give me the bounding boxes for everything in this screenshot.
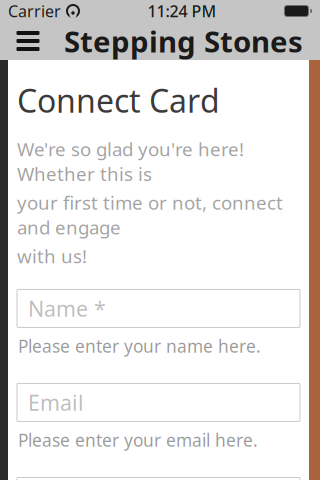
staticText: Please enter your name here. — [18, 334, 261, 357]
staticText: We're so glad you're here! Whether this … — [17, 136, 244, 186]
staticText: Please enter your email here. — [18, 428, 258, 451]
staticText: Carrier — [8, 0, 61, 22]
button[interactable]: Email — [17, 383, 300, 421]
staticText: 11:24 PM — [147, 0, 216, 22]
staticText: with us! — [17, 244, 87, 268]
staticText: Name * — [28, 294, 106, 323]
staticText: Stepping Stones — [64, 21, 303, 60]
staticText: Email — [28, 388, 84, 417]
staticText: Connect Card — [17, 79, 220, 121]
button[interactable]: Menu — [8, 22, 48, 60]
button[interactable]: Name * — [17, 289, 300, 327]
staticText: your first time or not, connect and enga… — [17, 190, 283, 240]
